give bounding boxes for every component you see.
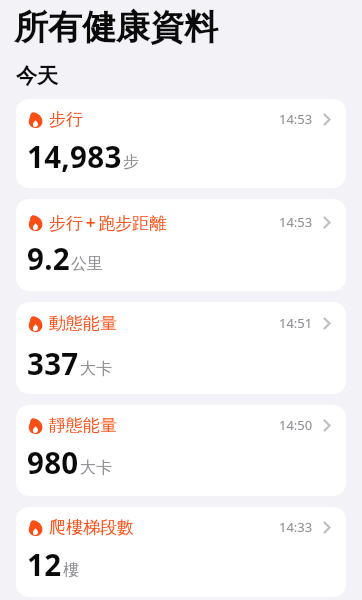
staticText: 大卡 bbox=[80, 359, 112, 379]
staticText: 9.2 bbox=[27, 238, 70, 278]
button[interactable]: 動態能量 bbox=[16, 302, 346, 394]
staticText: 大卡 bbox=[80, 458, 112, 478]
staticText: 步行 + 跑步距離 bbox=[49, 211, 167, 234]
button[interactable]: 步行 bbox=[16, 99, 346, 188]
staticText: 公里 bbox=[71, 254, 103, 274]
staticText: 14:33 bbox=[279, 518, 313, 536]
staticText: 步行 bbox=[49, 109, 83, 130]
button[interactable]: 爬樓梯段數 bbox=[16, 507, 346, 597]
staticText: 14:53 bbox=[279, 213, 313, 231]
staticText: 337 bbox=[27, 343, 79, 383]
staticText: 14:51 bbox=[279, 314, 313, 332]
staticText: 靜態能量 bbox=[49, 415, 117, 436]
staticText: 所有健康資料 bbox=[14, 6, 218, 49]
staticText: 樓 bbox=[63, 560, 79, 580]
button[interactable]: 步行 + 跑步距離 bbox=[16, 199, 346, 291]
staticText: 14:50 bbox=[279, 416, 313, 434]
staticText: 步 bbox=[123, 152, 139, 172]
staticText: 980 bbox=[27, 442, 79, 482]
staticText: 今天 bbox=[16, 63, 58, 89]
staticText: 14:53 bbox=[279, 110, 313, 128]
staticText: 12 bbox=[27, 544, 62, 584]
staticText: 14,983 bbox=[27, 136, 122, 176]
staticText: 動態能量 bbox=[49, 313, 117, 334]
button[interactable]: 靜態能量 bbox=[16, 405, 346, 496]
staticText: 爬樓梯段數 bbox=[49, 517, 134, 538]
